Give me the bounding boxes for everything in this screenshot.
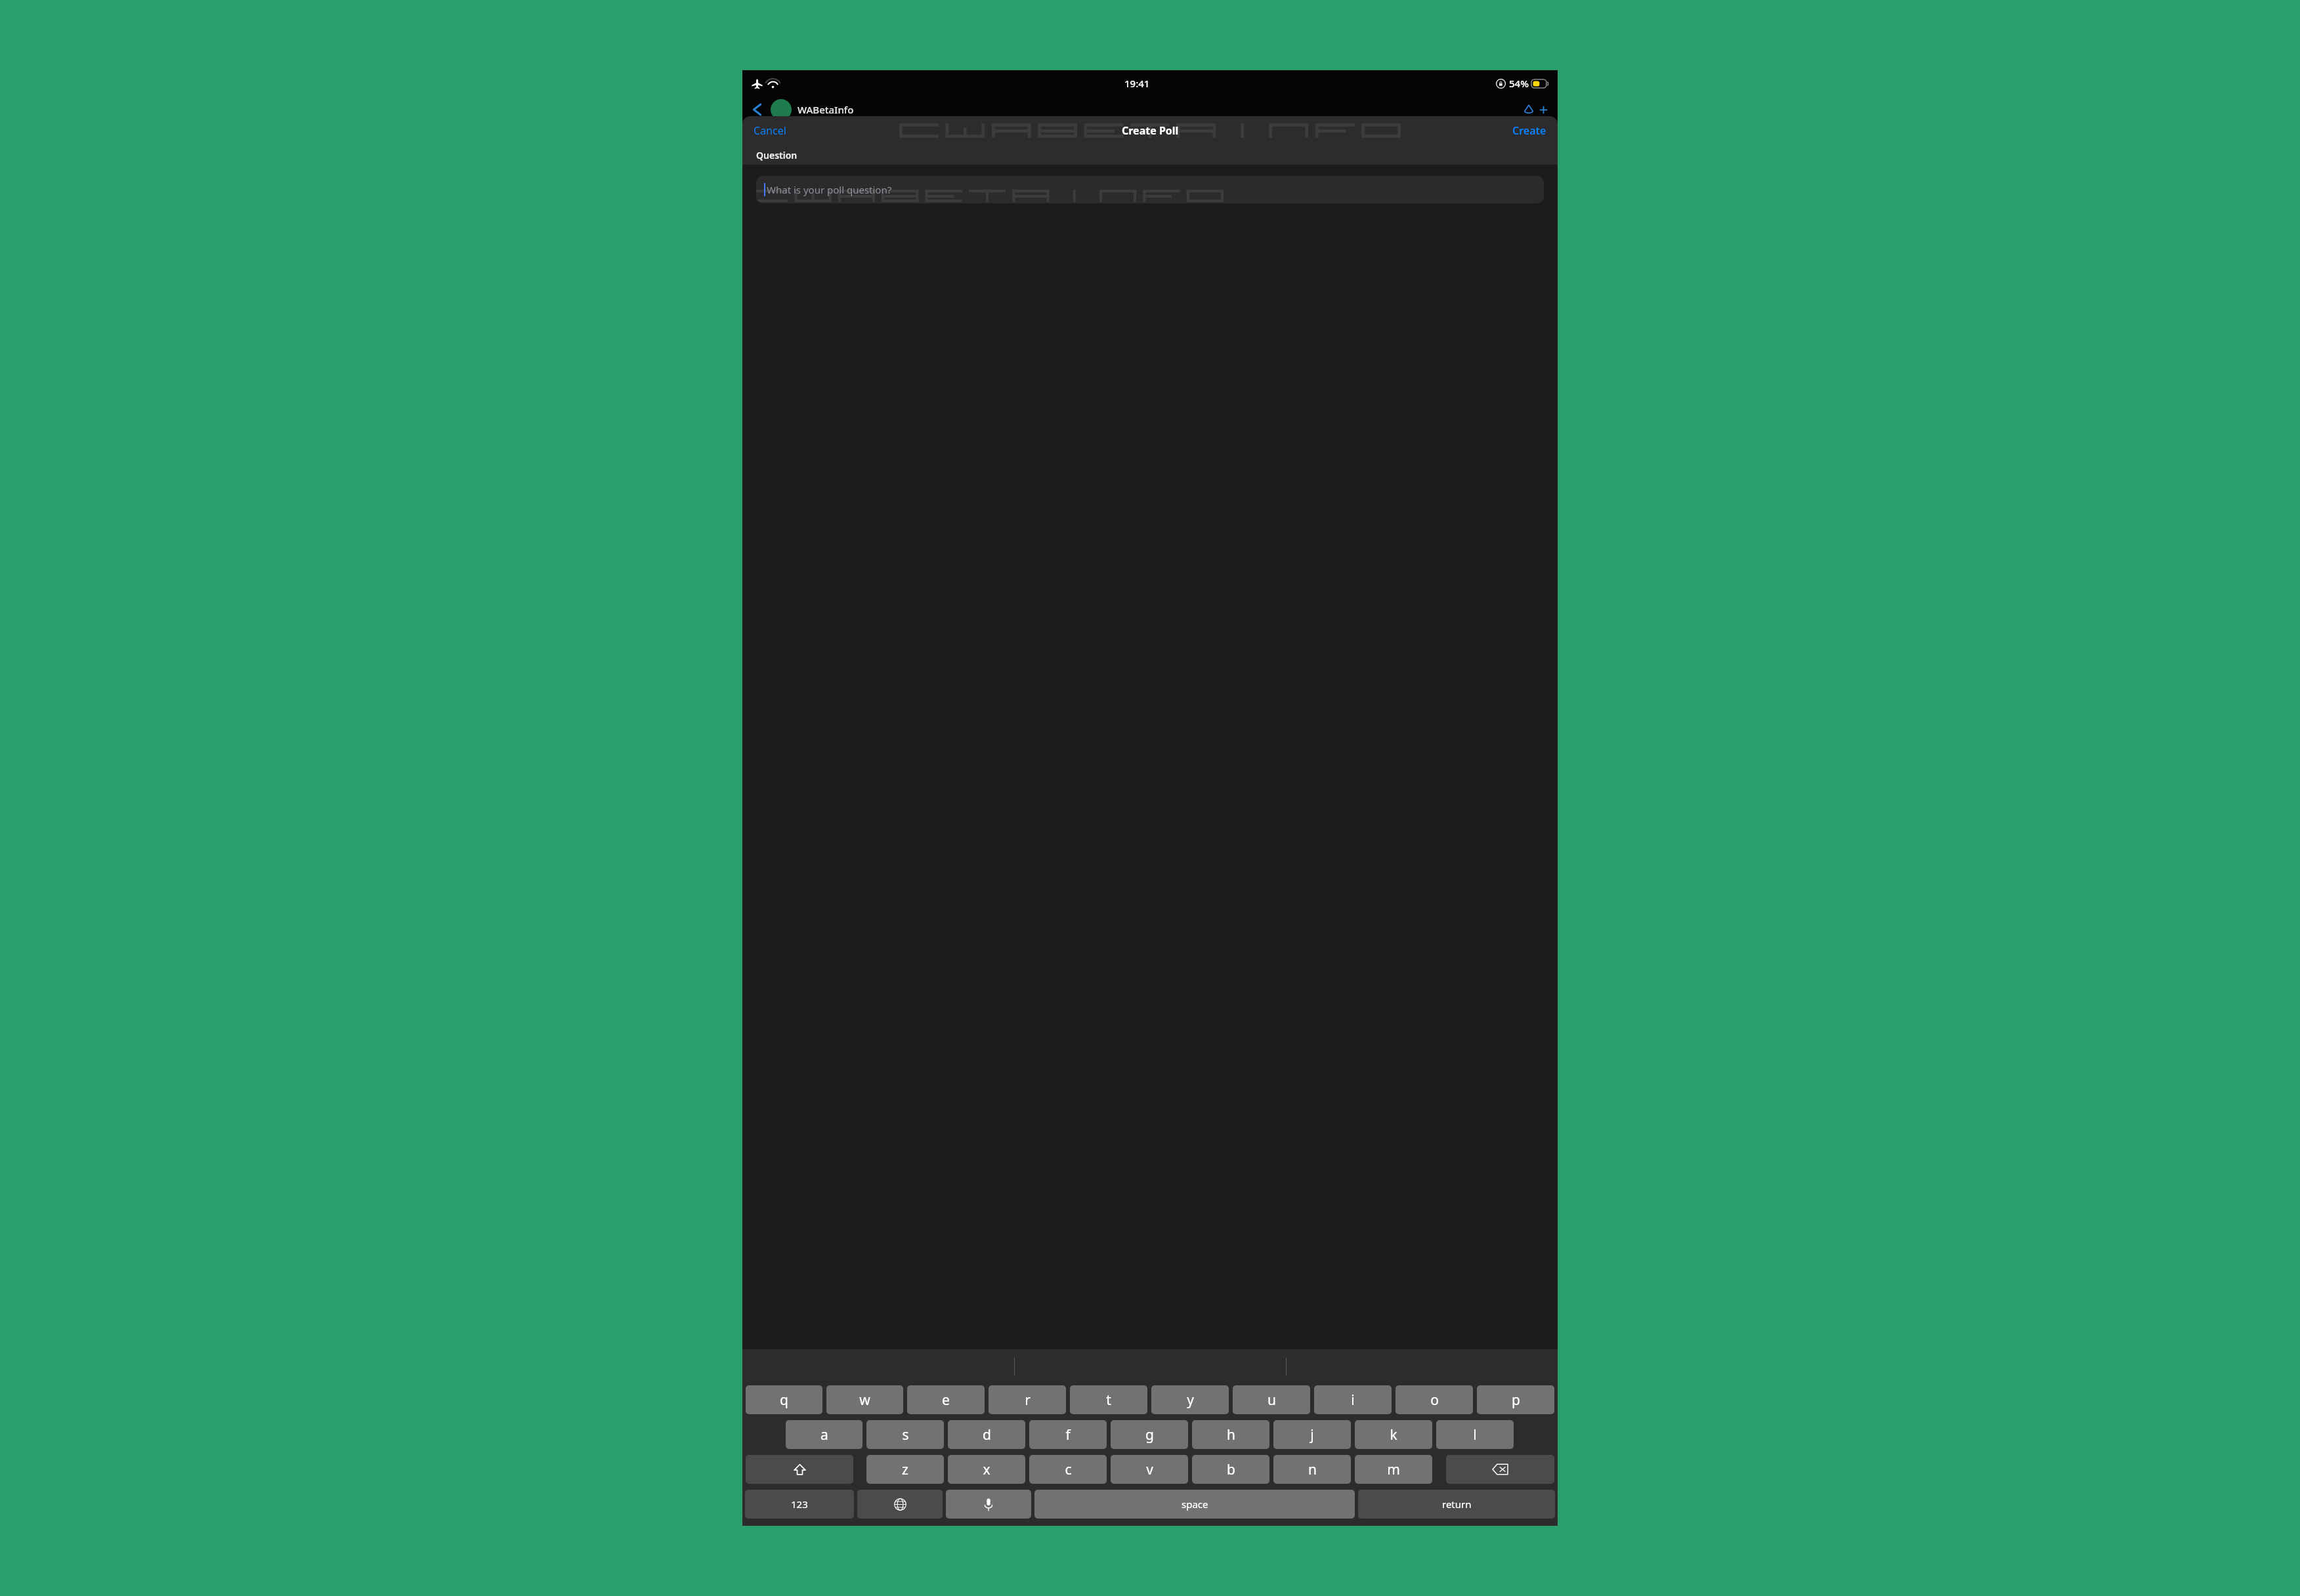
staticText: z bbox=[902, 1460, 908, 1479]
staticText: WABetaInfo bbox=[798, 103, 854, 116]
staticText: What is your poll question? bbox=[767, 183, 892, 196]
button[interactable]: Shift bbox=[746, 1455, 853, 1484]
staticText: c bbox=[1065, 1460, 1072, 1479]
staticText: v bbox=[1146, 1460, 1153, 1479]
button[interactable]: f bbox=[1029, 1420, 1107, 1449]
button[interactable]: b bbox=[1192, 1455, 1269, 1484]
button[interactable]: p bbox=[1477, 1385, 1554, 1414]
staticText: w bbox=[859, 1391, 870, 1410]
staticText: a bbox=[820, 1425, 828, 1444]
staticText: 54% bbox=[1509, 77, 1529, 90]
staticText: u bbox=[1267, 1391, 1276, 1410]
staticText: h bbox=[1227, 1425, 1235, 1444]
button[interactable]: Change keyboard bbox=[857, 1490, 943, 1519]
button[interactable]: i bbox=[1314, 1385, 1392, 1414]
button[interactable]: j bbox=[1273, 1420, 1351, 1449]
staticText: Create Poll bbox=[1122, 123, 1179, 138]
button[interactable]: space bbox=[1034, 1490, 1355, 1519]
staticText: Cancel bbox=[754, 123, 786, 138]
staticText: n bbox=[1308, 1460, 1317, 1479]
staticText: y bbox=[1187, 1391, 1194, 1410]
staticText: b bbox=[1227, 1460, 1235, 1479]
button[interactable]: s bbox=[866, 1420, 944, 1449]
staticText: o bbox=[1430, 1391, 1439, 1410]
staticText: Create bbox=[1512, 123, 1546, 138]
button[interactable]: Delete bbox=[1446, 1455, 1554, 1484]
button[interactable]: return bbox=[1358, 1490, 1555, 1519]
staticText: r bbox=[1025, 1391, 1031, 1410]
button[interactable]: Cancel bbox=[748, 119, 792, 142]
staticText: f bbox=[1065, 1425, 1071, 1444]
button[interactable]: k bbox=[1355, 1420, 1432, 1449]
staticText: i bbox=[1351, 1391, 1355, 1410]
staticText: return bbox=[1442, 1498, 1472, 1511]
button[interactable]: d bbox=[948, 1420, 1025, 1449]
button[interactable]: o bbox=[1395, 1385, 1473, 1414]
staticText: s bbox=[902, 1425, 909, 1444]
button[interactable]: x bbox=[948, 1455, 1025, 1484]
staticText: d bbox=[983, 1425, 991, 1444]
button[interactable]: l bbox=[1436, 1420, 1514, 1449]
staticText: g bbox=[1145, 1425, 1154, 1444]
button[interactable]: y bbox=[1151, 1385, 1229, 1414]
staticText: 123 bbox=[791, 1498, 808, 1511]
button[interactable]: t bbox=[1070, 1385, 1147, 1414]
staticText: k bbox=[1390, 1425, 1397, 1444]
staticText: x bbox=[983, 1460, 990, 1479]
staticText: t bbox=[1106, 1391, 1111, 1410]
button[interactable]: Create bbox=[1507, 119, 1552, 142]
button[interactable]: g bbox=[1111, 1420, 1188, 1449]
button[interactable]: r bbox=[989, 1385, 1066, 1414]
button[interactable]: a bbox=[786, 1420, 862, 1449]
button[interactable]: Numbers bbox=[745, 1490, 854, 1519]
button[interactable]: u bbox=[1233, 1385, 1310, 1414]
staticText: p bbox=[1512, 1391, 1520, 1410]
button[interactable]: q bbox=[746, 1385, 822, 1414]
button[interactable]: v bbox=[1111, 1455, 1188, 1484]
staticText: l bbox=[1473, 1425, 1477, 1444]
button[interactable]: What is your poll question? bbox=[756, 176, 1544, 203]
staticText: j bbox=[1310, 1425, 1314, 1444]
staticText: 19:41 bbox=[1124, 77, 1150, 90]
button[interactable]: h bbox=[1192, 1420, 1269, 1449]
staticText: e bbox=[942, 1391, 950, 1410]
staticText: m bbox=[1387, 1460, 1400, 1479]
staticText: Question bbox=[756, 149, 798, 161]
button[interactable]: w bbox=[826, 1385, 903, 1414]
button[interactable]: c bbox=[1029, 1455, 1107, 1484]
button[interactable]: Dictate bbox=[946, 1490, 1031, 1519]
staticText: space bbox=[1182, 1498, 1208, 1511]
staticText: q bbox=[780, 1391, 788, 1410]
button[interactable]: n bbox=[1273, 1455, 1351, 1484]
button[interactable]: m bbox=[1355, 1455, 1432, 1484]
button[interactable]: z bbox=[866, 1455, 944, 1484]
button[interactable]: e bbox=[907, 1385, 985, 1414]
